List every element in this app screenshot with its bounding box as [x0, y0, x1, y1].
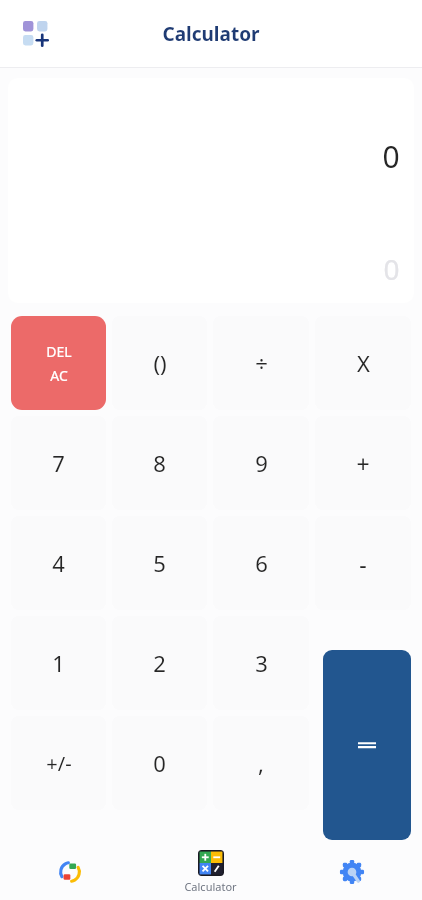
staticText: Calculator — [162, 21, 260, 47]
button[interactable]: Converter — [0, 843, 140, 900]
button[interactable]: 7 — [11, 416, 106, 510]
staticText: 8 — [153, 448, 166, 478]
button[interactable]: Add widget — [14, 12, 58, 56]
staticText: , — [258, 748, 264, 778]
staticText: X — [357, 348, 370, 378]
staticText: +/- — [46, 750, 72, 777]
button[interactable]: 9 — [213, 416, 309, 510]
staticText: + — [356, 448, 370, 479]
button[interactable]: , — [213, 716, 309, 810]
staticText: 6 — [255, 548, 268, 578]
staticText: 1 — [52, 648, 65, 678]
staticText: Calculator — [184, 879, 237, 894]
staticText: DEL — [46, 342, 72, 361]
button[interactable]: - — [315, 516, 411, 610]
button[interactable]: Calculator — [140, 843, 281, 900]
button[interactable]: 3 — [213, 616, 309, 710]
staticText: 2 — [153, 648, 166, 678]
button[interactable]: 2 — [112, 616, 207, 710]
button[interactable]: 6 — [213, 516, 309, 610]
staticText: 4 — [52, 548, 65, 578]
button[interactable]: 8 — [112, 416, 207, 510]
staticText: - — [359, 548, 367, 579]
staticText: 0 — [383, 250, 400, 288]
staticText: 5 — [153, 548, 166, 578]
staticText: 3 — [255, 648, 268, 678]
button[interactable]: 1 — [11, 616, 106, 710]
button[interactable]: 5 — [112, 516, 207, 610]
staticText: () — [153, 348, 167, 378]
button[interactable]: DEL — [11, 316, 106, 410]
button[interactable]: () — [112, 316, 207, 410]
staticText: 9 — [255, 448, 268, 478]
button[interactable]: ÷ — [213, 316, 309, 410]
staticText: 0 — [382, 136, 400, 177]
staticText: 7 — [52, 448, 65, 478]
button[interactable]: Equals — [323, 650, 411, 840]
button[interactable]: +/- — [11, 716, 106, 810]
button[interactable]: + — [315, 416, 411, 510]
button[interactable]: X — [315, 316, 411, 410]
button[interactable]: 4 — [11, 516, 106, 610]
button[interactable]: Settings — [281, 843, 422, 900]
staticText: AC — [50, 366, 68, 385]
staticText: 0 — [153, 748, 166, 778]
staticText: ÷ — [255, 348, 268, 378]
button[interactable]: 0 — [112, 716, 207, 810]
